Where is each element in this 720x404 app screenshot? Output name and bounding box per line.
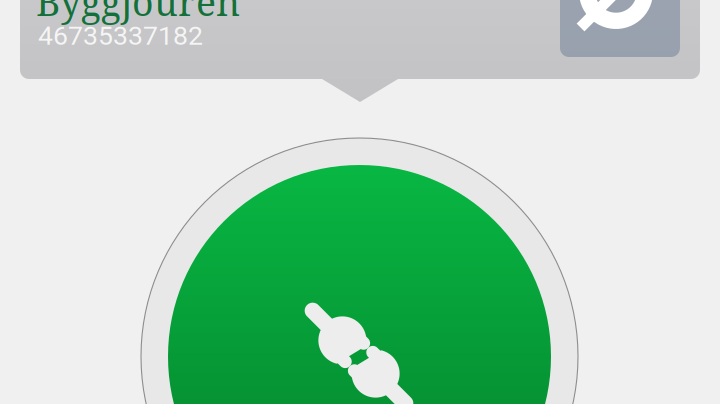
- button[interactable]: End call: [0, 0, 720, 404]
- staticText: 46735337182: [38, 20, 203, 51]
- staticText: Byggjouren: [36, 0, 240, 27]
